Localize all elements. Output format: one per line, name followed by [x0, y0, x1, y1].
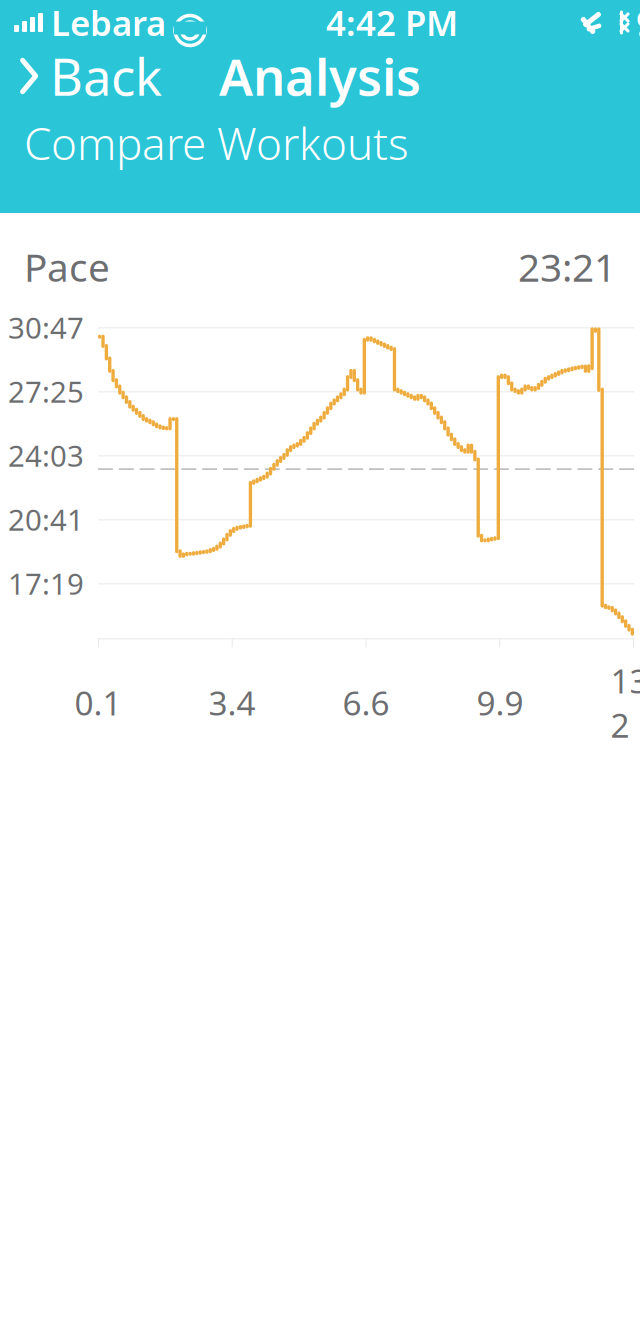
- staticText: 3.4: [208, 680, 255, 725]
- staticText: Back: [50, 42, 162, 110]
- staticText: 20:41: [8, 500, 84, 539]
- staticText: 13.2: [610, 658, 640, 747]
- staticText: 17:19: [8, 564, 84, 603]
- staticText: 6.6: [342, 680, 389, 725]
- staticText: 27:25: [8, 372, 84, 411]
- button[interactable]: Back: [0, 45, 180, 107]
- staticText: 24:03: [8, 436, 84, 475]
- staticText: Lebara: [51, 0, 166, 45]
- staticText: 9: [636, 0, 640, 45]
- staticText: 9.9: [476, 680, 523, 725]
- staticText: Analysis: [219, 42, 421, 110]
- staticText: 0.1: [74, 680, 121, 725]
- button[interactable]: Compare Workouts: [0, 107, 640, 179]
- staticText: 30:47: [8, 308, 84, 347]
- staticText: 23:21: [518, 241, 616, 292]
- staticText: 4:42 PM: [326, 0, 458, 45]
- staticText: Compare Workouts: [24, 114, 409, 172]
- staticText: Pace: [24, 241, 110, 292]
